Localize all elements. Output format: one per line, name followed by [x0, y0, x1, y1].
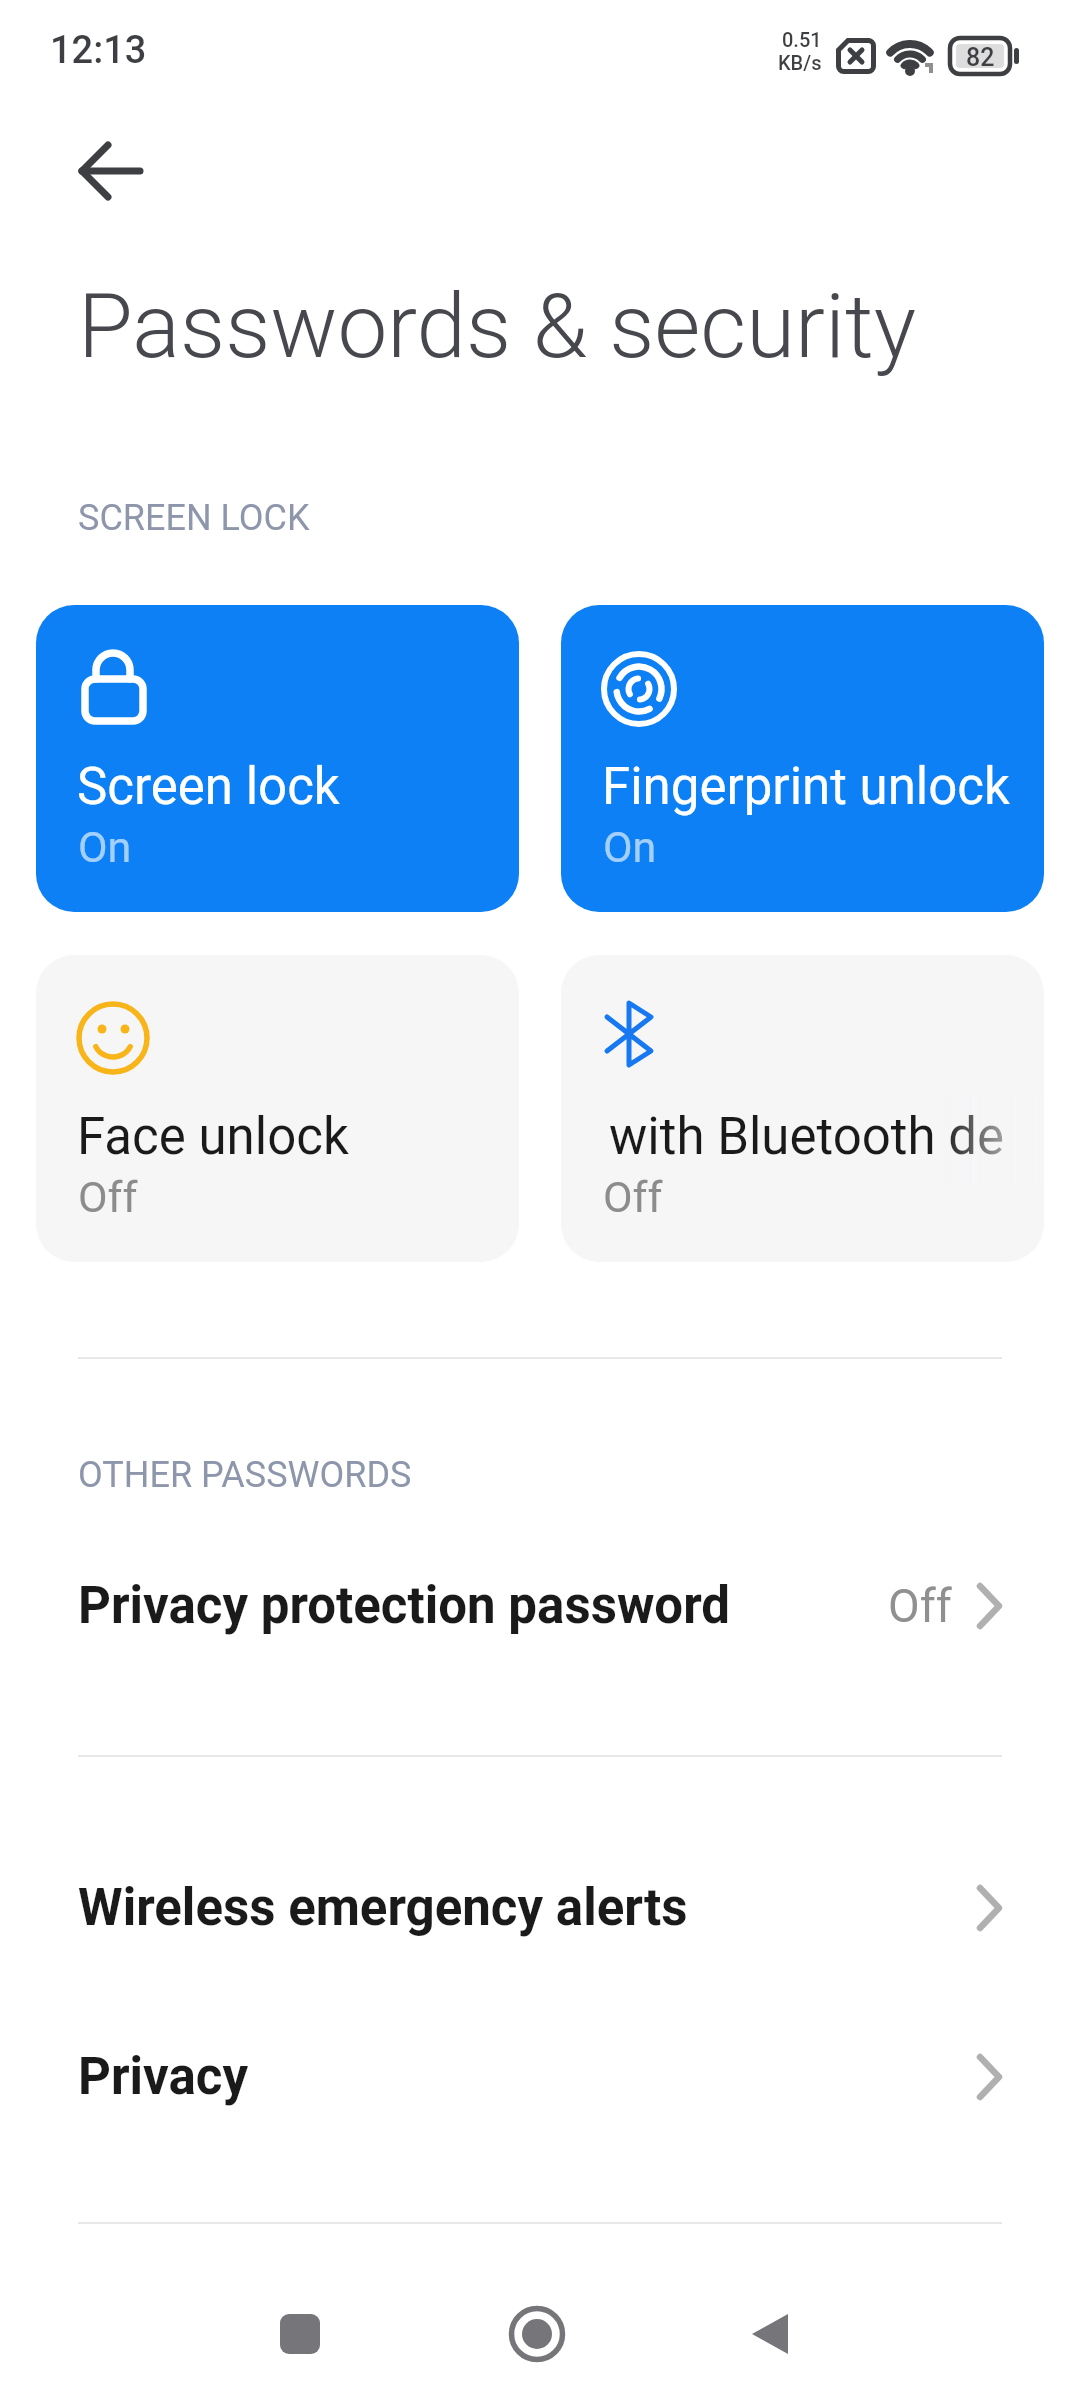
button[interactable]	[280, 2314, 320, 2354]
button[interactable]: Privacy	[0, 2011, 1080, 2143]
button[interactable]: Fingerprint unlock	[561, 605, 1044, 912]
staticText: Fingerprint unlock	[602, 757, 1010, 817]
button[interactable]	[70, 138, 150, 204]
staticText: OTHER PASSWORDS	[78, 1454, 412, 1496]
staticText: Privacy protection password	[78, 1576, 731, 1636]
button[interactable]: with Bluetooth de	[561, 955, 1044, 1262]
button[interactable]: Wireless emergency alerts	[0, 1842, 1080, 1974]
staticText: Wireless emergency alerts	[78, 1878, 688, 1938]
button[interactable]: Screen lock	[36, 605, 519, 912]
staticText: KB/s	[778, 51, 822, 74]
button[interactable]	[509, 2306, 565, 2362]
staticText: 0.51	[782, 28, 822, 51]
staticText: Off	[78, 1172, 138, 1222]
staticText: 12:13	[50, 28, 147, 73]
staticText: SCREEN LOCK	[78, 497, 310, 539]
staticText: Passwords & security	[78, 274, 917, 378]
staticText: On	[603, 822, 657, 872]
staticText: On	[78, 822, 132, 872]
button[interactable]: Face unlock	[36, 955, 519, 1262]
staticText: 82	[966, 43, 995, 72]
staticText: with Bluetooth de	[609, 1107, 1005, 1167]
staticText: Screen lock	[77, 757, 340, 817]
staticText: Off	[888, 1579, 952, 1633]
staticText: Off	[603, 1172, 663, 1222]
button[interactable]	[748, 2310, 792, 2358]
staticText: Face unlock	[77, 1107, 349, 1167]
button[interactable]: Privacy protection password	[0, 1540, 1080, 1672]
staticText: Privacy	[78, 2047, 249, 2107]
